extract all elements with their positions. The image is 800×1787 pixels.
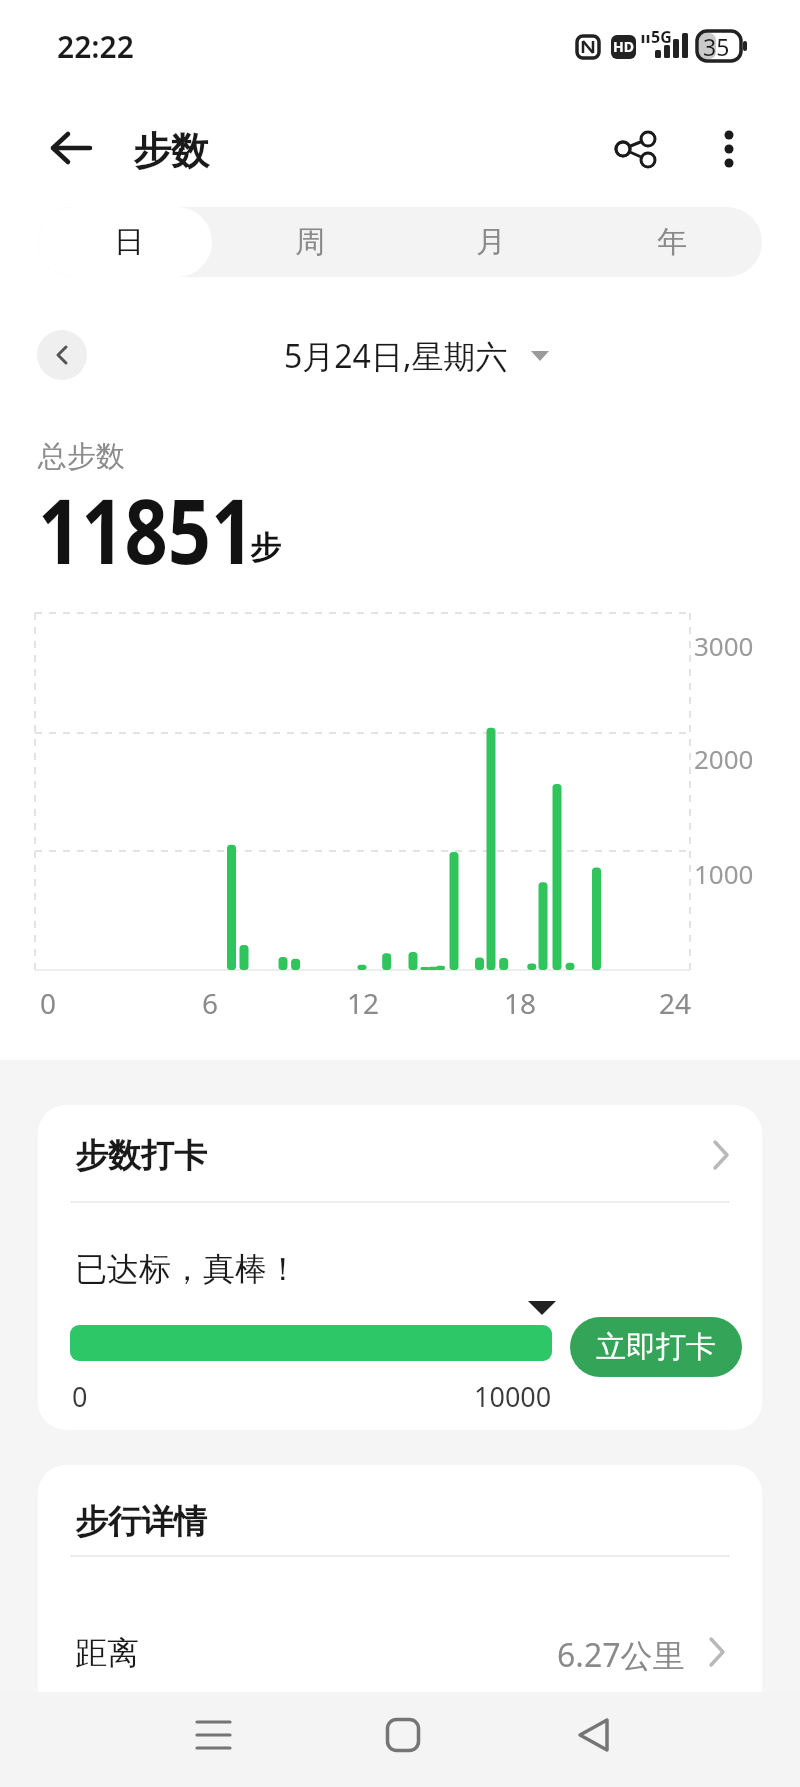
staticText: 24: [659, 984, 692, 1022]
button[interactable]: 日: [38, 207, 219, 277]
staticText: 步: [250, 528, 281, 567]
staticText: 步数: [133, 127, 209, 175]
staticText: 步数打卡: [75, 1135, 207, 1177]
button[interactable]: 5月24日,星期六: [284, 334, 550, 378]
button[interactable]: [368, 1700, 438, 1770]
staticText: 年: [657, 223, 687, 261]
staticText: 10000: [474, 1378, 552, 1415]
staticText: 距离: [75, 1633, 139, 1673]
staticText: 日: [114, 223, 144, 261]
staticText: 步行详情: [75, 1501, 207, 1543]
staticText: 22:22: [57, 26, 134, 67]
button[interactable]: [705, 120, 753, 180]
staticText: 18: [504, 984, 537, 1022]
staticText: 11851: [38, 468, 255, 591]
staticText: HD: [613, 37, 634, 56]
button[interactable]: [603, 120, 667, 180]
staticText: 6.27公里: [557, 1633, 685, 1677]
button[interactable]: 距离: [38, 1595, 762, 1695]
button[interactable]: [558, 1700, 628, 1770]
button[interactable]: [178, 1700, 248, 1770]
button[interactable]: 年: [581, 207, 762, 277]
staticText: 2000: [694, 741, 754, 776]
staticText: 35: [703, 31, 730, 62]
staticText: 5G: [651, 26, 672, 48]
staticText: 0: [40, 984, 57, 1022]
button[interactable]: 立即打卡: [570, 1317, 742, 1377]
button[interactable]: 步数打卡: [38, 1105, 762, 1201]
button[interactable]: [37, 330, 87, 380]
button[interactable]: [38, 118, 102, 182]
staticText: 月: [476, 223, 506, 261]
staticText: 5月24日,星期六: [284, 334, 508, 378]
button[interactable]: 月: [400, 207, 581, 277]
staticText: 立即打卡: [596, 1328, 716, 1366]
staticText: 已达标，真棒！: [75, 1249, 299, 1289]
staticText: 3000: [694, 628, 754, 663]
staticText: 1000: [694, 856, 754, 891]
staticText: 6: [202, 984, 219, 1022]
staticText: 总步数: [38, 438, 125, 475]
button[interactable]: 周: [219, 207, 400, 277]
staticText: 12: [347, 984, 380, 1022]
staticText: 周: [295, 223, 325, 261]
staticText: 0: [72, 1378, 88, 1415]
